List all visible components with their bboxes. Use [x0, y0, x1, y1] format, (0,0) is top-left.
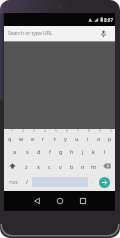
button[interactable]: m — [88, 159, 99, 173]
staticText: / — [26, 179, 28, 186]
staticText: g — [59, 148, 63, 155]
button[interactable]: c — [44, 159, 55, 173]
staticText: s — [26, 148, 29, 155]
button[interactable]: 3 — [27, 129, 38, 144]
button[interactable]: d — [33, 144, 44, 159]
button[interactable]: / — [22, 173, 32, 191]
staticText: m — [91, 163, 97, 170]
staticText: y — [64, 135, 67, 142]
button[interactable]: 4 — [38, 129, 49, 144]
button[interactable]: 0 — [104, 129, 115, 144]
staticText: 8:07 — [104, 17, 113, 23]
button[interactable]: f — [44, 144, 55, 159]
button[interactable]: 1 — [4, 129, 16, 144]
button[interactable]: . — [88, 173, 97, 191]
staticText: f — [49, 148, 51, 155]
staticText: 0 — [110, 128, 113, 133]
staticText: e — [31, 135, 35, 142]
button[interactable]: x — [32, 159, 44, 173]
staticText: c — [48, 163, 51, 170]
staticText: z — [25, 163, 28, 170]
button[interactable]: v — [55, 159, 66, 173]
button[interactable]: j — [77, 144, 88, 159]
button[interactable]: 5 — [49, 129, 60, 144]
staticText: w — [19, 135, 24, 142]
staticText: j — [82, 148, 84, 155]
button[interactable] — [33, 197, 41, 205]
staticText: p — [108, 135, 112, 142]
staticText: t — [54, 135, 56, 142]
button[interactable] — [79, 197, 87, 205]
staticText: l — [104, 148, 106, 155]
staticText: ?123 — [9, 180, 18, 185]
staticText: b — [70, 163, 74, 170]
staticText: k — [92, 148, 95, 155]
button[interactable]: Search or type URL — [4, 26, 115, 41]
button[interactable]: 9 — [93, 129, 104, 144]
button[interactable] — [56, 197, 64, 205]
button[interactable]: h — [66, 144, 77, 159]
staticText: 9 — [99, 128, 102, 133]
button[interactable]: k — [88, 144, 99, 159]
staticText: 7 — [77, 128, 80, 133]
staticText: o — [97, 135, 101, 142]
staticText: h — [70, 148, 74, 155]
staticText: i — [87, 135, 89, 142]
button[interactable]: a — [9, 144, 21, 159]
staticText: d — [37, 148, 41, 155]
button[interactable] — [97, 173, 115, 191]
staticText: 6 — [66, 128, 69, 133]
staticText: r — [42, 135, 45, 142]
staticText: Search or type URL — [8, 30, 53, 37]
button[interactable]: 8 — [82, 129, 93, 144]
staticText: 8 — [88, 128, 91, 133]
button[interactable]: n — [77, 159, 88, 173]
staticText: x — [37, 163, 40, 170]
button[interactable]: 2 — [16, 129, 27, 144]
staticText: a — [13, 148, 17, 155]
staticText: 2 — [22, 128, 25, 133]
button[interactable]: 6 — [60, 129, 71, 144]
button[interactable] — [4, 159, 20, 173]
staticText: u — [75, 135, 79, 142]
button[interactable]: ?123 — [4, 173, 22, 191]
button[interactable]: 7 — [71, 129, 82, 144]
staticText: 3 — [33, 128, 36, 133]
staticText: 5 — [55, 128, 58, 133]
staticText: v — [59, 163, 62, 170]
staticText: 1 — [11, 128, 14, 133]
button[interactable]: l — [99, 144, 110, 159]
button[interactable] — [99, 159, 115, 173]
staticText: 4 — [44, 128, 47, 133]
button[interactable]: z — [20, 159, 32, 173]
button[interactable]: g — [55, 144, 66, 159]
staticText: q — [8, 135, 12, 142]
button[interactable]: s — [21, 144, 33, 159]
staticText: n — [81, 163, 85, 170]
staticText: . — [92, 178, 94, 185]
button[interactable]: b — [66, 159, 77, 173]
